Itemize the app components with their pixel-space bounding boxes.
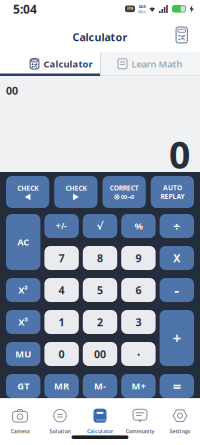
button[interactable]: 5	[83, 278, 117, 302]
staticText: 0	[169, 129, 190, 179]
staticText: MR	[54, 380, 69, 392]
button[interactable]: ÷	[160, 214, 194, 238]
staticText: REPLAY	[160, 192, 184, 201]
button[interactable]: +	[160, 310, 194, 366]
button[interactable]: 3	[121, 310, 156, 334]
staticText: CHECK	[65, 184, 86, 193]
button[interactable]: X³	[6, 310, 40, 334]
button[interactable]	[175, 26, 200, 43]
staticText: X²	[18, 284, 28, 296]
staticText: +/-	[56, 221, 67, 231]
staticText: M+	[131, 380, 145, 392]
staticText: AC	[17, 236, 29, 248]
staticText: =	[173, 376, 181, 396]
button[interactable]: 4	[44, 278, 79, 302]
staticText: 4	[59, 283, 65, 297]
staticText: √	[96, 220, 103, 232]
staticText: CHECK	[17, 184, 38, 193]
staticText: Settings	[169, 428, 190, 435]
button[interactable]: 8	[83, 246, 117, 270]
staticText: 1	[59, 315, 65, 329]
staticText: MU	[15, 348, 31, 360]
button[interactable]: 0	[44, 342, 79, 366]
button[interactable]: =	[160, 374, 194, 398]
staticText: 24.0	[138, 4, 145, 9]
button[interactable]: CHECK	[54, 176, 97, 208]
staticText: 8	[97, 251, 103, 265]
button[interactable]: M+	[121, 374, 156, 398]
staticText: 9	[135, 251, 141, 265]
staticText: ·	[137, 346, 140, 362]
staticText: ÷	[173, 218, 180, 234]
button[interactable]: Solution	[40, 409, 80, 435]
button[interactable]: AC	[6, 214, 40, 270]
button[interactable]: 1	[44, 310, 79, 334]
staticText: 00	[6, 83, 18, 98]
button[interactable]: GT	[6, 374, 40, 398]
button[interactable]: X²	[6, 278, 40, 302]
staticText: 2	[97, 315, 103, 329]
staticText: 00→0	[121, 193, 134, 200]
button[interactable]: Camera	[0, 409, 40, 435]
staticText: Calculator	[43, 58, 92, 70]
button[interactable]: √	[83, 214, 117, 238]
staticText: Calculator	[87, 428, 113, 435]
button[interactable]: MR	[44, 374, 79, 398]
staticText: X³	[18, 316, 28, 328]
button[interactable]: M-	[83, 374, 117, 398]
button[interactable]: Calculator	[80, 409, 120, 435]
staticText: %	[134, 220, 142, 232]
button[interactable]: -	[160, 278, 194, 302]
staticText: 7	[59, 251, 65, 265]
staticText: KB/s	[138, 9, 146, 14]
button[interactable]: Learn Math	[100, 52, 200, 76]
button[interactable]: %	[121, 214, 156, 238]
staticText: Camera	[10, 428, 29, 435]
staticText: 3	[135, 315, 141, 329]
button[interactable]: 9	[121, 246, 156, 270]
staticText: +	[173, 328, 181, 348]
button[interactable]: CORRECT	[102, 176, 146, 208]
staticText: Community	[125, 428, 154, 435]
staticText: AUTO	[163, 183, 182, 192]
staticText: Solution	[49, 428, 70, 435]
button[interactable]: 7	[44, 246, 79, 270]
button[interactable]: Community	[120, 409, 160, 435]
staticText: Calculator	[72, 30, 127, 44]
staticText: X	[173, 251, 180, 265]
staticText: Learn Math	[131, 58, 182, 70]
staticText: GT	[17, 380, 29, 392]
button[interactable]: 00	[83, 342, 117, 366]
button[interactable]: MU	[6, 342, 40, 366]
button[interactable]: +/-	[44, 214, 79, 238]
staticText: -	[174, 280, 179, 300]
button[interactable]: Calculator	[0, 52, 100, 76]
button[interactable]: 6	[121, 278, 156, 302]
staticText: 6	[135, 283, 141, 297]
staticText: 00	[94, 347, 106, 361]
staticText: 5	[97, 283, 103, 297]
button[interactable]: CHECK	[6, 176, 49, 208]
button[interactable]: 2	[83, 310, 117, 334]
button[interactable]: ·	[121, 342, 156, 366]
staticText: CORRECT	[110, 183, 139, 192]
button[interactable]: X	[160, 246, 194, 270]
staticText: M-	[94, 380, 106, 392]
button[interactable]: AUTO	[151, 176, 194, 208]
button[interactable]: Settings	[160, 409, 200, 435]
staticText: 5:04	[13, 1, 37, 17]
staticText: 0	[59, 347, 65, 361]
staticText: VPN	[127, 7, 133, 11]
